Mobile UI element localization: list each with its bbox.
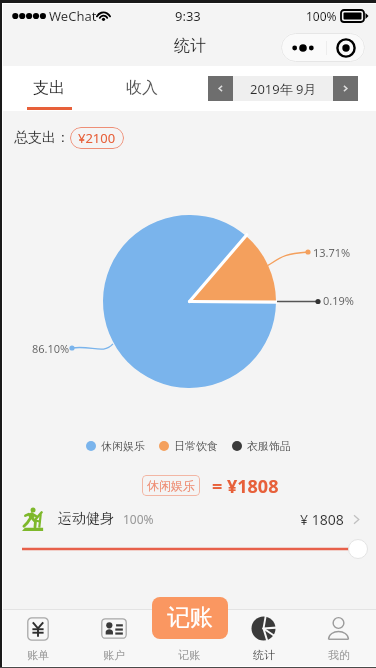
button[interactable]: 记账 <box>151 610 226 668</box>
button[interactable]: 账户 <box>76 610 151 668</box>
button[interactable]: 运动健身 <box>22 505 360 533</box>
button[interactable]: 支出 <box>13 66 85 111</box>
button[interactable]: 记账 <box>152 597 228 639</box>
button[interactable]: 我的 <box>301 610 376 668</box>
staticText: 日常饮食 <box>174 439 218 453</box>
button[interactable]: 账单 <box>0 610 76 668</box>
staticText: 总支出： <box>14 129 70 147</box>
staticText: ¥2100 <box>78 129 116 147</box>
staticText: 100% <box>123 511 154 527</box>
staticText: ¥ 1808 <box>300 510 344 529</box>
staticText: 衣服饰品 <box>247 439 291 453</box>
staticText: 记账 <box>167 603 213 632</box>
staticText: 休闲娱乐 <box>147 478 195 493</box>
button[interactable]: Previous month <box>208 76 233 101</box>
staticText: 2019年 9月 <box>250 80 317 98</box>
staticText: 账户 <box>103 648 125 662</box>
staticText: 13.71% <box>313 245 351 260</box>
staticText: 86.10% <box>32 341 70 356</box>
staticText: 支出 <box>33 78 65 98</box>
staticText: 统计 <box>174 36 206 56</box>
staticText: 9:33 <box>175 7 201 25</box>
staticText: 休闲娱乐 <box>101 439 145 453</box>
staticText: 我的 <box>328 648 350 662</box>
staticText: 账单 <box>27 648 49 662</box>
staticText: 收入 <box>126 78 158 98</box>
button[interactable]: Next month <box>333 76 358 101</box>
staticText: 记账 <box>178 648 200 662</box>
staticText: = ¥1808 <box>212 474 279 496</box>
button[interactable]: 统计 <box>226 610 301 668</box>
staticText: 0.19% <box>323 293 354 308</box>
staticText: WeChat <box>49 7 97 25</box>
staticText: 统计 <box>253 648 275 662</box>
staticText: 运动健身 <box>58 510 114 528</box>
button[interactable]: More menu <box>281 33 365 62</box>
button[interactable]: 收入 <box>106 66 178 111</box>
staticText: 100% <box>306 8 337 24</box>
